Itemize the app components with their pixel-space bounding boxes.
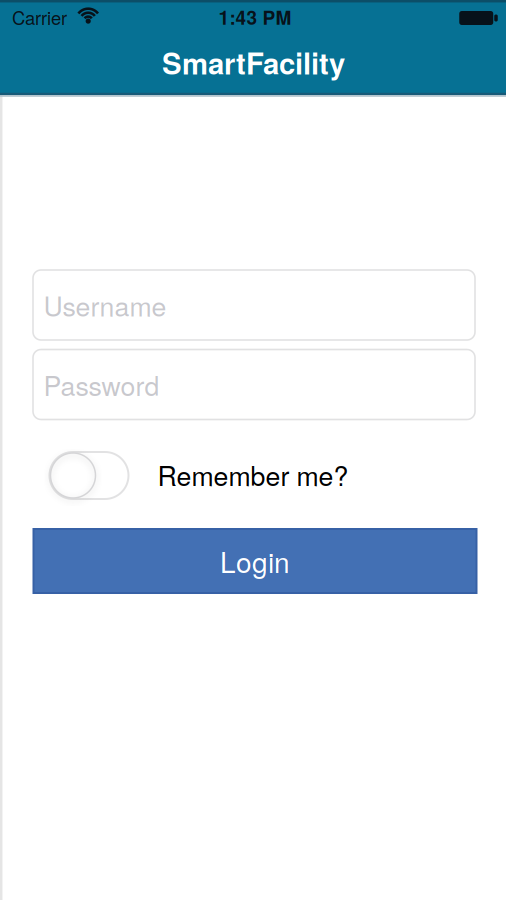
button[interactable]: Login [33,529,476,593]
staticText: Username [43,286,166,324]
staticText: SmartFacility [162,41,345,83]
staticText: Remember me? [157,455,348,494]
staticText: Carrier [12,4,67,30]
button[interactable]: Password [33,349,475,419]
staticText: 1:43 PM [218,3,291,31]
button[interactable]: Remember me [49,452,128,499]
staticText: Password [43,365,159,404]
staticText: Login [220,541,290,581]
button[interactable]: Username [33,270,475,340]
